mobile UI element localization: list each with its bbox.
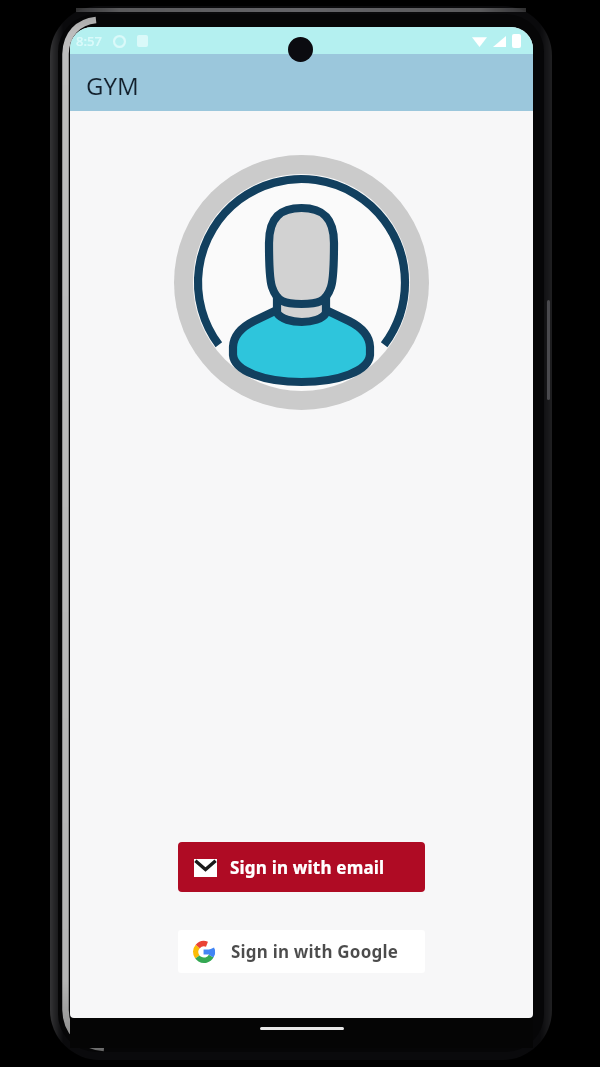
staticText: GYM	[86, 69, 139, 102]
staticText: Sign in with email	[230, 856, 385, 879]
staticText: Sign in with Google	[231, 940, 399, 963]
staticText: 8:57	[76, 32, 102, 50]
button[interactable]: Sign in with Google	[178, 930, 425, 973]
button[interactable]: Sign in with email	[178, 842, 425, 892]
